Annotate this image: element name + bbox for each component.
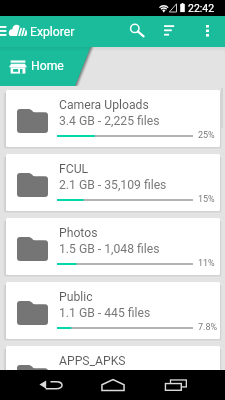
button[interactable]: Public [6,282,220,339]
staticText: Camera Uploads [59,98,149,112]
button[interactable]: Search [126,16,148,47]
staticText: 15% [198,194,215,205]
button[interactable]: More options [198,16,217,47]
button[interactable]: Home [9,47,64,86]
staticText: 2.1 GB - 35,109 files [59,178,167,192]
staticText: 11% [198,258,215,269]
staticText: Explorer [30,25,75,39]
button[interactable]: Sort [160,16,182,47]
staticText: 1.5 GB - 1,048 files [59,242,160,256]
button[interactable]: Photos [6,218,220,275]
button[interactable]: Back [31,370,71,400]
staticText: 22:42 [188,2,215,14]
staticText: APPS_APKS [59,354,126,368]
staticText: FCUL [59,162,89,176]
staticText: 25% [198,130,215,141]
button[interactable]: Camera Uploads [6,90,220,147]
staticText: Public [59,290,93,304]
staticText: Home [31,59,64,73]
button[interactable]: Open navigation drawer [0,16,9,47]
staticText: 3.4 GB - 2,225 files [59,114,160,128]
button[interactable]: Home [93,370,133,400]
staticText: 7.8% [198,322,218,333]
button[interactable]: FCUL [6,154,220,211]
staticText: Photos [59,226,98,240]
staticText: 1.1 GB - 445 files [59,306,151,320]
button[interactable]: Recent apps [156,370,196,400]
button[interactable]: APPS_APKS [6,346,220,400]
